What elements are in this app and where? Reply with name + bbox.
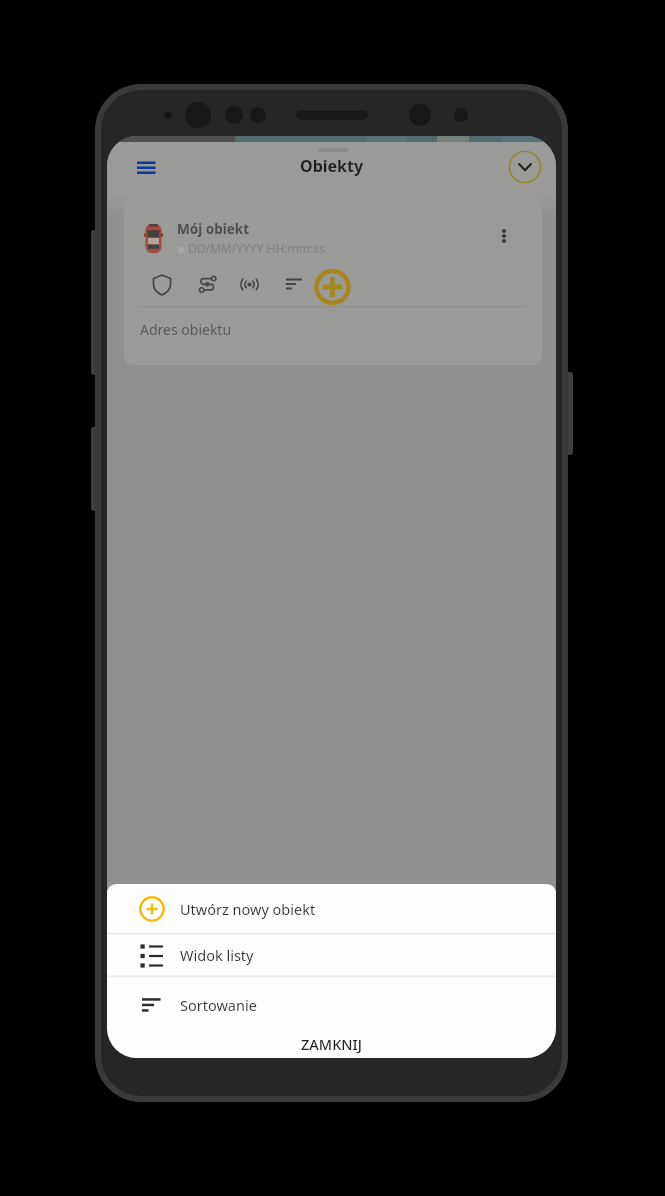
button[interactable] xyxy=(310,265,354,309)
button[interactable]: Mój obiekt xyxy=(124,198,542,365)
button[interactable] xyxy=(228,264,270,306)
button[interactable]: Utwórz nowy obiekt xyxy=(107,884,556,933)
button[interactable]: ZAMKNIJ xyxy=(107,1030,556,1058)
button[interactable] xyxy=(185,264,227,306)
staticText: Sortowanie xyxy=(180,995,257,1015)
button[interactable] xyxy=(482,212,526,256)
staticText: Widok listy xyxy=(180,945,254,965)
button[interactable] xyxy=(141,264,183,306)
button[interactable] xyxy=(126,147,166,187)
staticText: Utwórz nowy obiekt xyxy=(180,899,316,919)
staticText: DD/MM/YYYY HH:mm:ss xyxy=(188,240,325,256)
button[interactable] xyxy=(505,147,545,187)
staticText: Adres obiektu xyxy=(140,320,232,339)
staticText: ZAMKNIJ xyxy=(301,1034,362,1054)
button[interactable] xyxy=(273,263,315,305)
button[interactable]: Sortowanie xyxy=(107,977,556,1033)
button[interactable]: Widok listy xyxy=(107,934,556,975)
staticText: Mój obiekt xyxy=(177,220,249,238)
staticText: Obiekty xyxy=(300,155,364,177)
